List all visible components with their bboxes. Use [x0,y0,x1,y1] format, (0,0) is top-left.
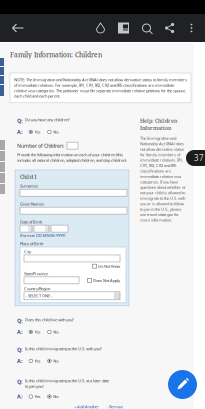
staticText: The Immigration and Nationality Act (INA… [140,135,186,223]
staticText: NOTE: The Immigration and Nationality Ac… [14,77,187,99]
button[interactable]: Back [0,14,36,42]
staticText: Help: Children Information [140,117,177,131]
staticText: - Remove [107,404,123,409]
staticText: No [53,394,58,399]
staticText: Place of Birth [20,241,43,246]
staticText: - SELECT ONE - [26,293,52,298]
staticText: City [24,249,31,254]
staticText: Child 1 [20,173,37,180]
staticText: Does Not Apply [93,278,120,283]
staticText: No [53,329,58,335]
staticText: State/Province [24,271,48,276]
button[interactable]: Search [135,14,158,42]
button[interactable]: Edit [168,370,197,399]
staticText: 37 [194,153,204,163]
staticText: Yes [35,394,41,399]
staticText: Yes [35,329,41,335]
staticText: A: [17,357,22,365]
staticText: Surnames [20,183,38,189]
staticText: Do you have any children? [25,117,70,122]
staticText: Date of Birth [20,219,42,225]
staticText: + Add Another [74,404,99,409]
button[interactable]: More options [181,14,202,42]
staticText: Yes [35,129,41,135]
staticText: Q: [17,346,22,353]
button[interactable]: + Add Another [74,404,99,409]
staticText: (Format: DD-MMM-YYYY) [20,233,65,238]
button[interactable]: - Remove [107,404,123,409]
staticText: Number of Children: [17,142,64,149]
button[interactable]: Share [158,14,181,42]
staticText: Is this child immigrating to the U.S. wi… [25,346,102,351]
staticText: Q: [17,317,22,324]
staticText: Provide the following information on eac… [17,152,127,163]
staticText: A: [17,393,22,400]
staticText: Family Information: Children [10,50,102,59]
staticText: Q: [17,378,22,385]
staticText: A: [17,128,22,136]
button[interactable]: Theme [89,14,112,42]
staticText: Is this child immigrating to the U.S. at… [25,378,109,389]
staticText: A: [17,328,22,336]
staticText: No [53,358,58,364]
staticText: No [53,129,58,135]
button[interactable]: Reader mode [112,14,135,42]
staticText: Given Names [20,201,44,207]
staticText: Yes [35,358,41,364]
staticText: Country/Region [24,286,50,291]
staticText: Q: [17,117,22,124]
staticText: Does this child live with you? [25,317,74,322]
staticText: Do Not Know [98,263,120,269]
